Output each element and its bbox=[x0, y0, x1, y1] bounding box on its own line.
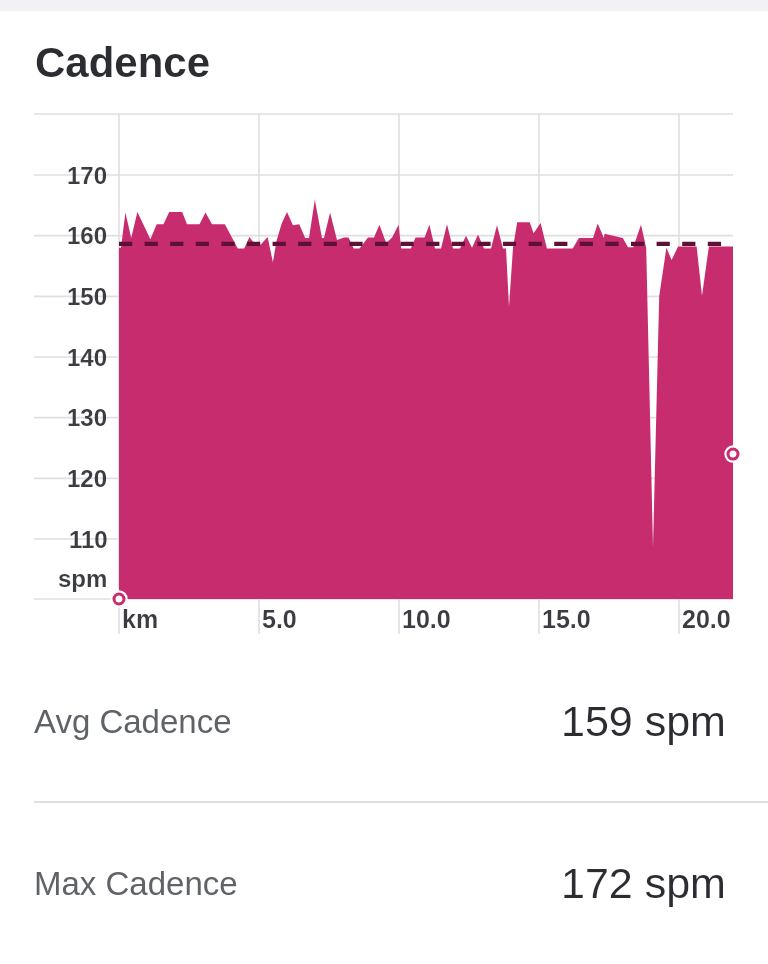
button[interactable]: Avg Cadence bbox=[0, 641, 768, 801]
staticText: 172 spm bbox=[561, 859, 726, 907]
staticText: Max Cadence bbox=[34, 865, 238, 902]
staticText: Avg Cadence bbox=[34, 703, 232, 740]
other: Cadence chart, 159 spm average over 20 k… bbox=[0, 113, 768, 641]
staticText: 159 spm bbox=[561, 697, 726, 745]
staticText: Cadence bbox=[35, 39, 211, 86]
button[interactable]: Max Cadence bbox=[0, 803, 768, 963]
